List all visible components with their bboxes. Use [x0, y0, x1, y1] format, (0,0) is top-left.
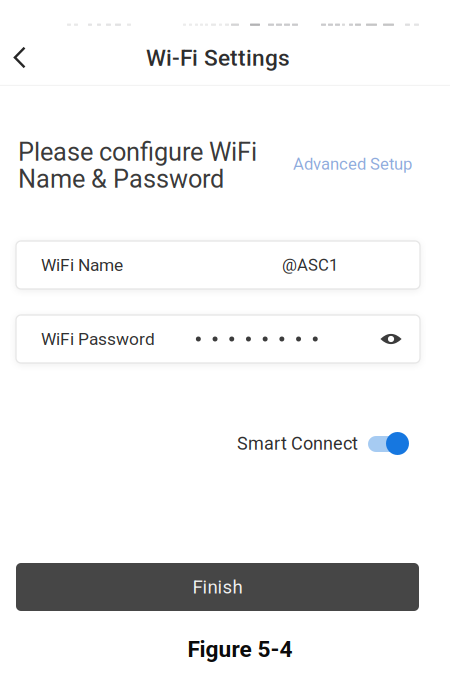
- staticText: Figure 5-4: [187, 636, 292, 663]
- button[interactable]: WiFi Password: [16, 315, 420, 363]
- staticText: Finish: [192, 576, 242, 598]
- staticText: Wi-Fi Settings: [146, 45, 290, 71]
- button[interactable]: Smart Connect: [237, 427, 409, 460]
- staticText: Advanced Setup: [293, 154, 412, 174]
- staticText: Smart Connect: [237, 433, 358, 454]
- button[interactable]: Finish: [16, 563, 419, 611]
- staticText: Name & Password: [18, 164, 224, 194]
- staticText: WiFi Password: [41, 329, 155, 349]
- staticText: @ASC1: [282, 255, 338, 275]
- button[interactable]: Advanced Setup: [272, 149, 412, 179]
- staticText: Please configure WiFi: [18, 137, 257, 167]
- button[interactable]: Back: [0, 33, 43, 83]
- staticText: WiFi Name: [41, 255, 123, 275]
- button[interactable]: WiFi Name: [16, 241, 420, 289]
